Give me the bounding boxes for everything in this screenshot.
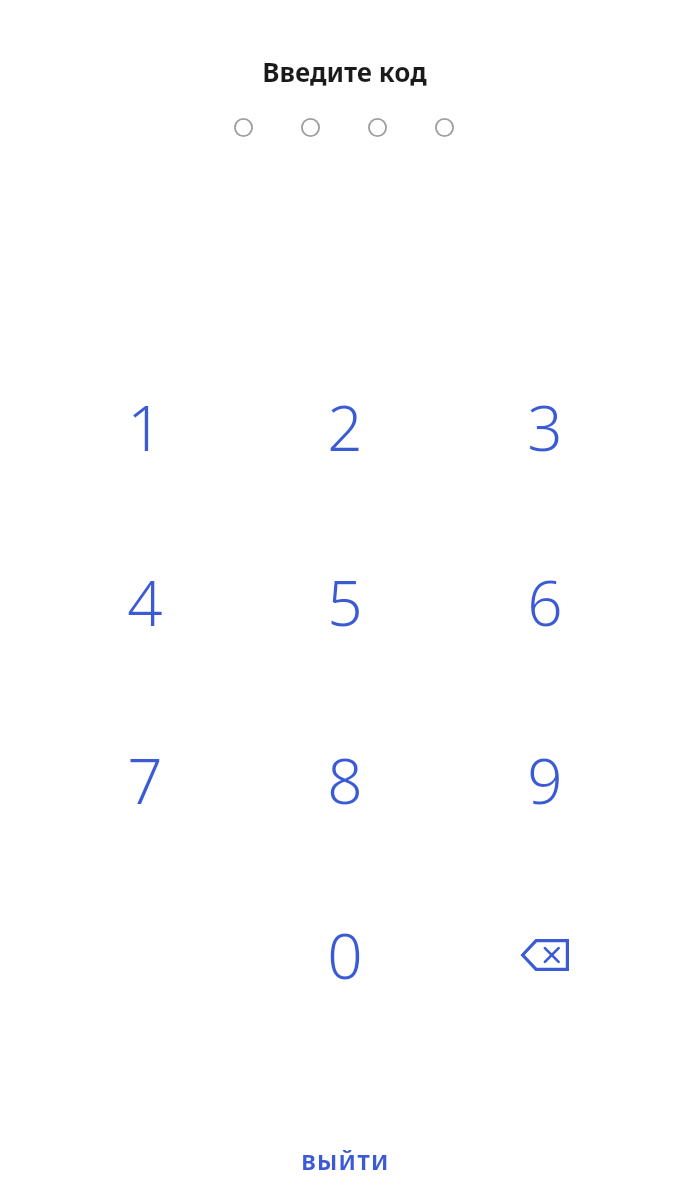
staticText: 7 <box>127 738 163 822</box>
button[interactable]: 4 <box>80 537 210 667</box>
staticText: Введите код <box>262 54 427 89</box>
button[interactable]: 8 <box>280 715 410 845</box>
staticText: 4 <box>127 560 163 644</box>
staticText: 3 <box>527 385 563 469</box>
staticText: 5 <box>327 560 363 644</box>
staticText: 6 <box>527 560 563 644</box>
button[interactable]: 6 <box>480 537 610 667</box>
staticText: 1 <box>127 385 163 469</box>
button[interactable]: 0 <box>280 890 410 1020</box>
button[interactable]: 5 <box>280 537 410 667</box>
button[interactable]: 2 <box>280 362 410 492</box>
staticText: 0 <box>327 913 363 997</box>
staticText: ВЫЙТИ <box>301 1146 390 1176</box>
button[interactable]: 7 <box>80 715 210 845</box>
staticText: 9 <box>527 738 563 822</box>
button[interactable]: ВЫЙТИ <box>235 1135 455 1187</box>
button[interactable]: 3 <box>480 362 610 492</box>
staticText: 8 <box>327 738 363 822</box>
button[interactable]: Backspace <box>480 890 610 1020</box>
button[interactable]: 9 <box>480 715 610 845</box>
button[interactable]: 1 <box>80 362 210 492</box>
staticText: 2 <box>327 385 363 469</box>
